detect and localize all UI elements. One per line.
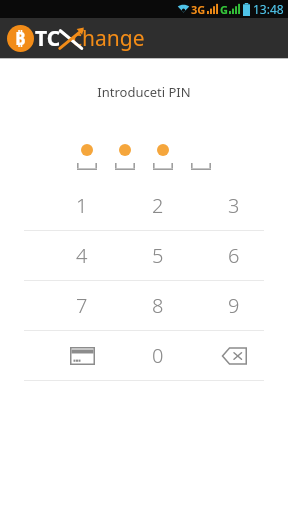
- button[interactable]: 7: [44, 281, 120, 330]
- button[interactable]: 8: [120, 281, 196, 330]
- staticText: ₿: [15, 26, 26, 51]
- button[interactable]: 2: [120, 181, 196, 230]
- button[interactable]: 3: [196, 181, 272, 230]
- button[interactable]: Backspace: [196, 331, 272, 380]
- staticText: 6: [228, 242, 240, 269]
- staticText: 8: [152, 292, 164, 319]
- staticText: 2: [152, 192, 164, 219]
- staticText: TC: [35, 24, 61, 53]
- button[interactable]: 1: [44, 181, 120, 230]
- staticText: 3G: [191, 2, 206, 17]
- staticText: 1: [76, 192, 88, 219]
- staticText: 0: [152, 342, 164, 369]
- staticText: 5: [152, 242, 164, 269]
- button[interactable]: 4: [44, 231, 120, 280]
- button[interactable]: 0: [120, 331, 196, 380]
- staticText: Introduceti PIN: [97, 83, 191, 101]
- staticText: 7: [76, 292, 88, 319]
- staticText: 3: [228, 192, 240, 219]
- staticText: change: [72, 24, 145, 53]
- button[interactable]: 6: [196, 231, 272, 280]
- staticText: G: [220, 2, 228, 17]
- staticText: 4: [76, 242, 88, 269]
- staticText: 9: [228, 292, 240, 319]
- button[interactable]: BTCXchange home: [7, 24, 145, 53]
- button[interactable]: Card: [44, 331, 120, 380]
- button[interactable]: 5: [120, 231, 196, 280]
- staticText: 13:48: [253, 1, 284, 17]
- button[interactable]: 9: [196, 281, 272, 330]
